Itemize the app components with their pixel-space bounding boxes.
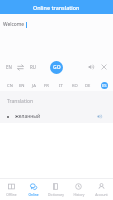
button[interactable]: Play audio: [88, 64, 94, 70]
button[interactable]: KO: [69, 80, 79, 90]
staticText: RU: [30, 64, 36, 70]
button[interactable]: DE: [82, 80, 92, 90]
button[interactable]: желанный: [0, 110, 113, 123]
staticText: GO: [53, 64, 61, 71]
staticText: желанный: [15, 113, 41, 120]
button[interactable]: Account: [90, 183, 113, 196]
staticText: JA: [32, 83, 36, 89]
button[interactable]: IT: [55, 80, 65, 90]
staticText: FR: [44, 83, 49, 89]
button[interactable]: Dictionary: [44, 183, 67, 196]
staticText: Translation: [7, 98, 34, 105]
staticText: Offline: [6, 192, 17, 196]
staticText: Online translation: [33, 4, 80, 11]
button[interactable]: Play translation: [97, 114, 102, 119]
button[interactable]: FR: [41, 80, 51, 90]
button[interactable]: JA: [28, 80, 38, 90]
button[interactable]: EN: [3, 61, 15, 73]
staticText: Account: [95, 192, 108, 196]
button[interactable]: CN: [4, 80, 14, 90]
staticText: Online: [28, 192, 39, 196]
button[interactable]: Clear: [101, 64, 107, 70]
button[interactable]: ES: [99, 80, 109, 90]
staticText: KO: [72, 83, 78, 89]
button[interactable]: GO: [50, 61, 63, 74]
button[interactable]: Online: [22, 183, 44, 196]
staticText: Welcome: [3, 21, 25, 28]
button[interactable]: EN: [16, 80, 26, 90]
staticText: EN: [19, 83, 25, 89]
button[interactable]: RU: [27, 61, 39, 73]
staticText: IT: [59, 83, 63, 89]
staticText: CN: [7, 83, 13, 89]
button[interactable]: Offline: [0, 183, 22, 196]
staticText: EN: [6, 64, 12, 70]
staticText: History: [73, 192, 85, 196]
staticText: ES: [102, 83, 107, 89]
button[interactable]: History: [67, 183, 90, 196]
button[interactable]: Swap languages: [17, 64, 24, 71]
staticText: DE: [85, 83, 91, 89]
staticText: Dictionary: [48, 192, 64, 196]
